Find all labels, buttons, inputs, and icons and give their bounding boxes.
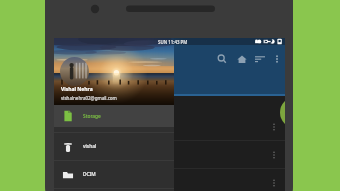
button[interactable]: More options (268, 149, 280, 161)
button[interactable]: More options (268, 121, 280, 133)
button[interactable]: Profile photo (60, 57, 89, 86)
staticText: SUN 11:43 PM (158, 39, 188, 45)
button[interactable]: vishal (54, 133, 174, 160)
button[interactable]: More options (268, 177, 280, 189)
button[interactable]: Add (280, 97, 285, 128)
button[interactable]: Sort (254, 53, 266, 65)
staticText: vishalnehra02@gmail.com (61, 95, 117, 101)
staticText: DCIM (83, 171, 96, 178)
staticText: vishal (83, 143, 97, 150)
button[interactable]: More options (271, 53, 283, 65)
button[interactable]: Home (236, 53, 248, 65)
staticText: Vishal Nehra (61, 86, 93, 93)
staticText: Storage (83, 113, 101, 120)
button[interactable]: Storage (54, 105, 174, 127)
button[interactable]: Search (216, 53, 228, 65)
button[interactable]: DCIM (54, 161, 174, 188)
